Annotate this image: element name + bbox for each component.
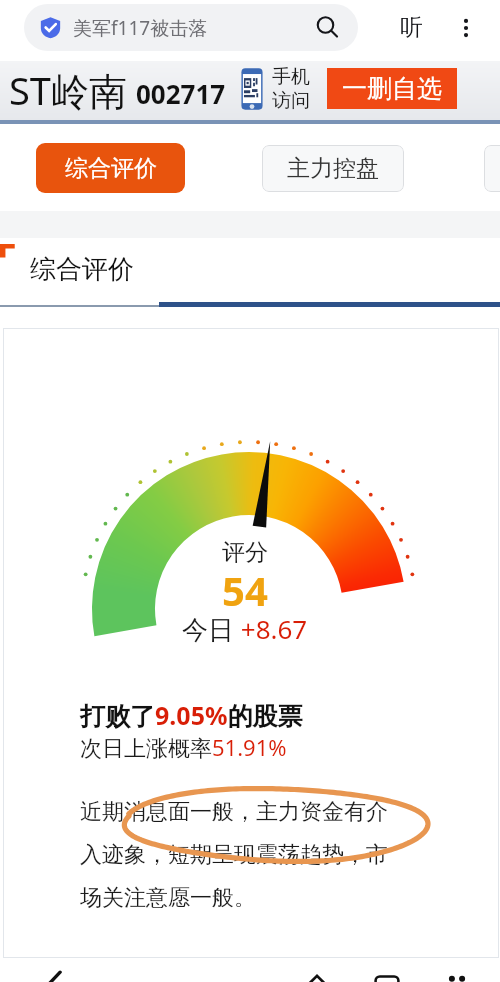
staticText: 打败了9.05%的股票: [80, 698, 303, 732]
staticText: 美军f117被击落: [73, 15, 208, 41]
button[interactable]: Menu: [422, 962, 492, 982]
button[interactable]: Mobile access: [240, 65, 310, 113]
staticText: ST岭南: [9, 64, 127, 116]
staticText: 访问: [272, 89, 310, 113]
staticText: 综合评价: [30, 253, 134, 286]
button[interactable]: 美军f117被击落: [24, 4, 358, 51]
staticText: 近期消息面一般，主力资金有介入迹象，短期呈现震荡趋势，市场关注意愿一般。: [80, 798, 392, 912]
staticText: 次日上涨概率51.91%: [80, 732, 287, 762]
button[interactable]: 综合评价: [36, 143, 185, 193]
button[interactable]: 资金流向: [484, 145, 500, 192]
staticText: 手机: [272, 65, 310, 89]
button[interactable]: 一删自选: [327, 68, 457, 109]
button[interactable]: 主力控盘: [262, 145, 404, 192]
button[interactable]: Home: [282, 962, 352, 982]
staticText: 综合评价: [65, 154, 157, 183]
button[interactable]: Tabs: [352, 962, 422, 982]
other: Mobile access: [240, 67, 264, 111]
button[interactable]: 听: [394, 13, 429, 42]
staticText: 听: [400, 13, 423, 42]
staticText: 一删自选: [342, 73, 442, 104]
staticText: 主力控盘: [287, 154, 379, 183]
other: Search: [315, 15, 340, 40]
staticText: 评分: [222, 538, 268, 567]
staticText: 54: [222, 563, 268, 617]
button[interactable]: Back: [25, 962, 85, 982]
staticText: 002717: [136, 76, 226, 111]
button[interactable]: More options: [451, 13, 481, 43]
staticText: 今日 +8.67: [182, 611, 308, 647]
